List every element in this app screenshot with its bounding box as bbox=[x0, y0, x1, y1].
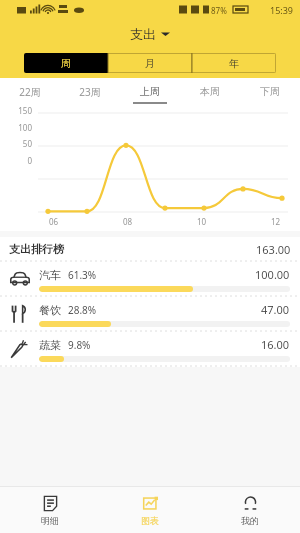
staticText: 月 bbox=[145, 57, 155, 70]
staticText: 28.8% bbox=[68, 303, 97, 317]
staticText: 本周 bbox=[200, 85, 220, 98]
staticText: 0 bbox=[4, 155, 32, 166]
staticText: 图表 bbox=[141, 515, 159, 526]
staticText: 支出 bbox=[130, 26, 156, 42]
staticText: 22周 bbox=[19, 85, 41, 99]
button[interactable]: 周 bbox=[24, 53, 108, 73]
staticText: 明细 bbox=[41, 515, 59, 526]
staticText: 100 bbox=[4, 122, 32, 133]
staticText: 23周 bbox=[79, 85, 101, 99]
button[interactable]: 图表 bbox=[100, 487, 200, 533]
button[interactable]: 下周 bbox=[240, 78, 300, 105]
staticText: 9.8% bbox=[68, 338, 91, 352]
staticText: 15:39 bbox=[270, 4, 294, 16]
button[interactable]: 汽车 bbox=[0, 262, 300, 296]
button[interactable]: 明细 bbox=[0, 487, 100, 533]
staticText: 87% bbox=[211, 5, 227, 16]
button[interactable]: 月 bbox=[108, 53, 192, 73]
staticText: 61.3% bbox=[68, 268, 97, 282]
staticText: 蔬菜 bbox=[39, 338, 61, 352]
staticText: 50 bbox=[4, 138, 32, 149]
staticText: 100.00 bbox=[255, 267, 290, 282]
staticText: 150 bbox=[4, 105, 32, 116]
staticText: 年 bbox=[229, 57, 239, 70]
staticText: 我的 bbox=[241, 515, 259, 526]
button[interactable]: 我的 bbox=[200, 487, 300, 533]
staticText: 支出排行榜 bbox=[9, 242, 64, 256]
staticText: 16.00 bbox=[261, 337, 290, 352]
button[interactable]: 年 bbox=[192, 53, 276, 73]
staticText: 下周 bbox=[260, 85, 280, 98]
staticText: 周 bbox=[61, 57, 71, 70]
staticText: 12 bbox=[271, 216, 281, 227]
button[interactable]: 餐饮 bbox=[0, 297, 300, 331]
staticText: 08 bbox=[123, 216, 133, 227]
button[interactable]: 23周 bbox=[60, 78, 120, 105]
button[interactable]: 22周 bbox=[0, 78, 60, 105]
button[interactable]: 蔬菜 bbox=[0, 332, 300, 366]
staticText: 汽车 bbox=[39, 268, 61, 282]
staticText: 10 bbox=[197, 216, 207, 227]
button[interactable]: 支出 bbox=[120, 23, 180, 45]
staticText: 06 bbox=[49, 216, 59, 227]
staticText: 163.00 bbox=[256, 242, 291, 257]
button[interactable]: 上周 bbox=[120, 78, 180, 105]
button[interactable]: 本周 bbox=[180, 78, 240, 105]
staticText: 47.00 bbox=[261, 302, 290, 317]
staticText: 餐饮 bbox=[39, 303, 61, 317]
staticText: 上周 bbox=[140, 85, 160, 98]
